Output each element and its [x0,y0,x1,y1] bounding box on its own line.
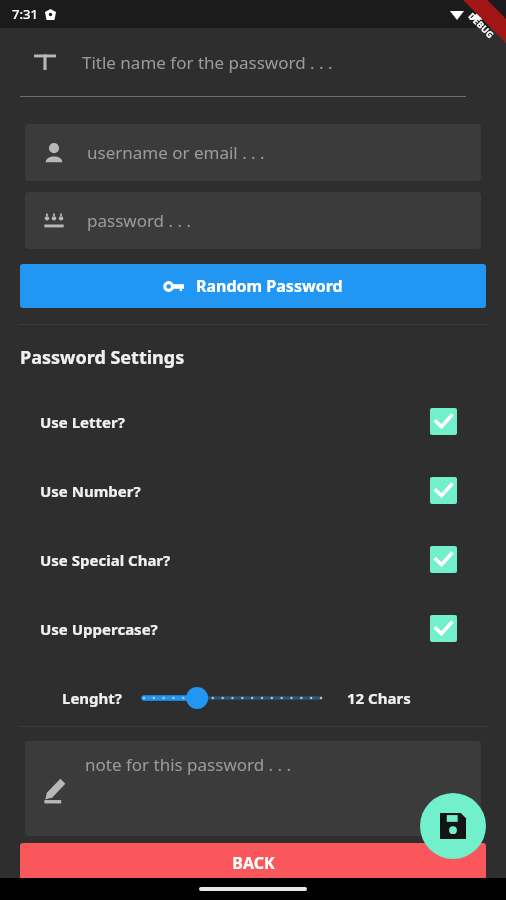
staticText: Use Uppercase? [40,619,158,639]
staticText: Use Letter? [40,412,125,432]
staticText: Random Password [196,275,343,297]
button[interactable] [144,683,321,713]
staticText: 12 Chars [347,688,411,708]
staticText: password . . . [87,209,191,232]
button[interactable]: BACK [20,843,486,887]
staticText: note for this password . . . [85,753,292,776]
staticText: Use Number? [40,481,141,501]
staticText: Lenght? [62,688,122,708]
staticText: Use Special Char? [40,550,171,570]
button[interactable]: password . . . [25,192,481,249]
staticText: 7:31 [12,5,38,23]
staticText: Password Settings [20,345,185,370]
button[interactable]: Use Number? [0,456,506,525]
staticText: DEBUG [466,10,497,40]
staticText: BACK [232,852,275,874]
button[interactable]: username or email . . . [25,124,481,181]
button[interactable]: Title name for the password . . . [0,28,506,96]
button[interactable]: note for this password . . . [25,741,481,836]
button[interactable]: Use Special Char? [0,525,506,594]
button[interactable]: Save password [420,793,486,859]
button[interactable]: Use Uppercase? [0,594,506,663]
button[interactable]: Use Letter? [0,387,506,456]
staticText: Title name for the password . . . [82,51,333,74]
staticText: username or email . . . [87,141,265,164]
button[interactable]: Random Password [20,264,486,308]
